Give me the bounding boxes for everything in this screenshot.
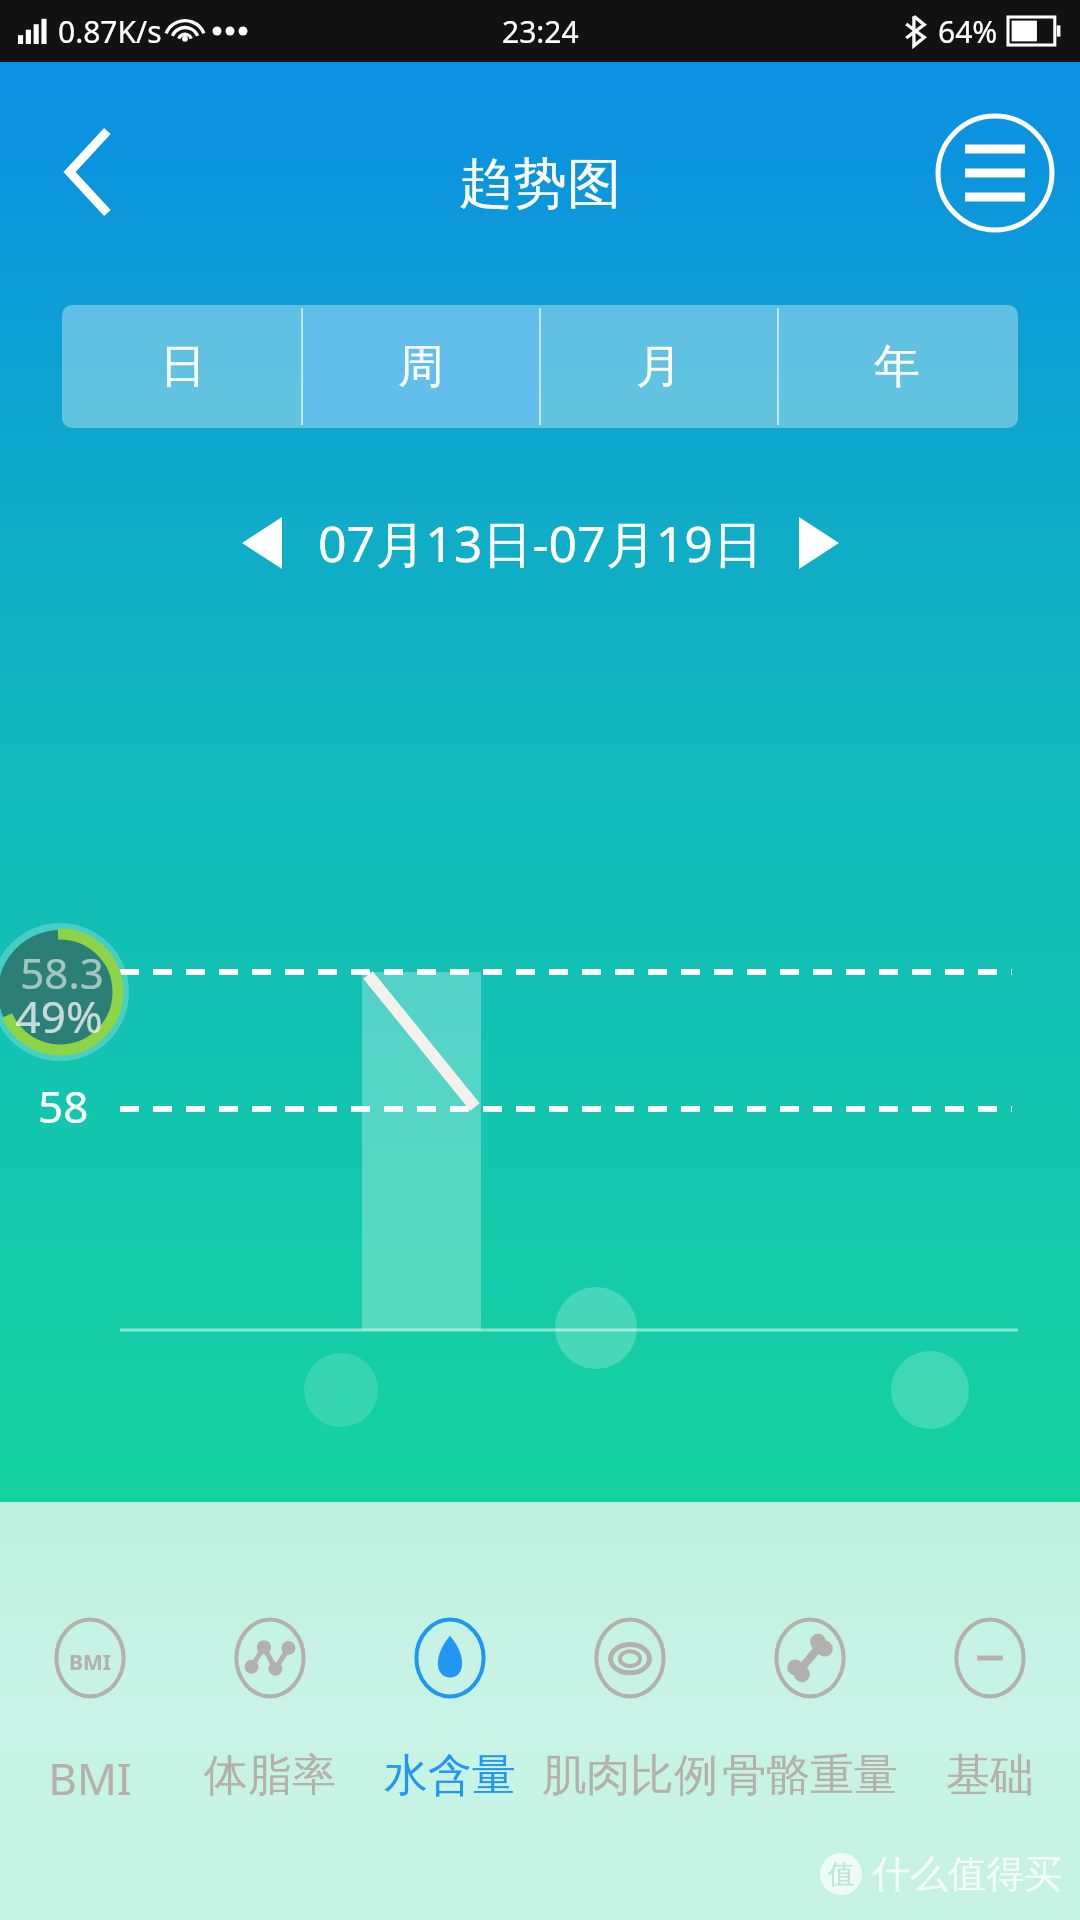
button[interactable]: Next week [773, 497, 865, 589]
button[interactable]: 体脂率 [180, 1610, 360, 1850]
staticText: 体脂率 [204, 1748, 336, 1803]
staticText: 23:24 [502, 11, 579, 52]
staticText: 值 [828, 1858, 854, 1891]
staticText: 基础 [946, 1748, 1034, 1803]
staticText: 周 [398, 338, 444, 396]
staticText: 日 [160, 338, 206, 396]
button[interactable]: 基础 [900, 1610, 1080, 1850]
staticText: 水含量 [384, 1748, 516, 1803]
button[interactable]: 月 [541, 308, 777, 425]
staticText: 0.87K/s [58, 11, 162, 52]
button[interactable]: BMI [0, 1610, 180, 1850]
staticText: 年 [874, 338, 920, 396]
staticText: 月 [636, 338, 682, 396]
staticText: BMI [48, 1748, 132, 1808]
staticText: 49% [0, 986, 118, 1046]
staticText: 肌肉比例 [542, 1748, 718, 1803]
staticText: 什么值得买 [872, 1850, 1062, 1898]
staticText: 64% [938, 11, 998, 52]
button[interactable]: Back [14, 102, 164, 242]
staticText: 骨骼重量 [722, 1748, 898, 1803]
staticText: BMI [69, 1648, 111, 1677]
staticText: 07月13日-07月19日 [318, 509, 763, 577]
button[interactable]: 肌肉比例 [540, 1610, 720, 1850]
button[interactable]: Menu [926, 104, 1064, 242]
staticText: 58.3 [0, 944, 124, 1001]
button[interactable]: 周 [303, 308, 539, 425]
staticText: 趋势图 [459, 150, 621, 218]
button[interactable]: 水含量 [360, 1610, 540, 1850]
button[interactable]: Previous week [216, 497, 308, 589]
staticText: 58 [38, 1076, 89, 1136]
button[interactable]: 骨骼重量 [720, 1610, 900, 1850]
button[interactable]: 年 [779, 308, 1015, 425]
button[interactable]: 日 [65, 308, 301, 425]
